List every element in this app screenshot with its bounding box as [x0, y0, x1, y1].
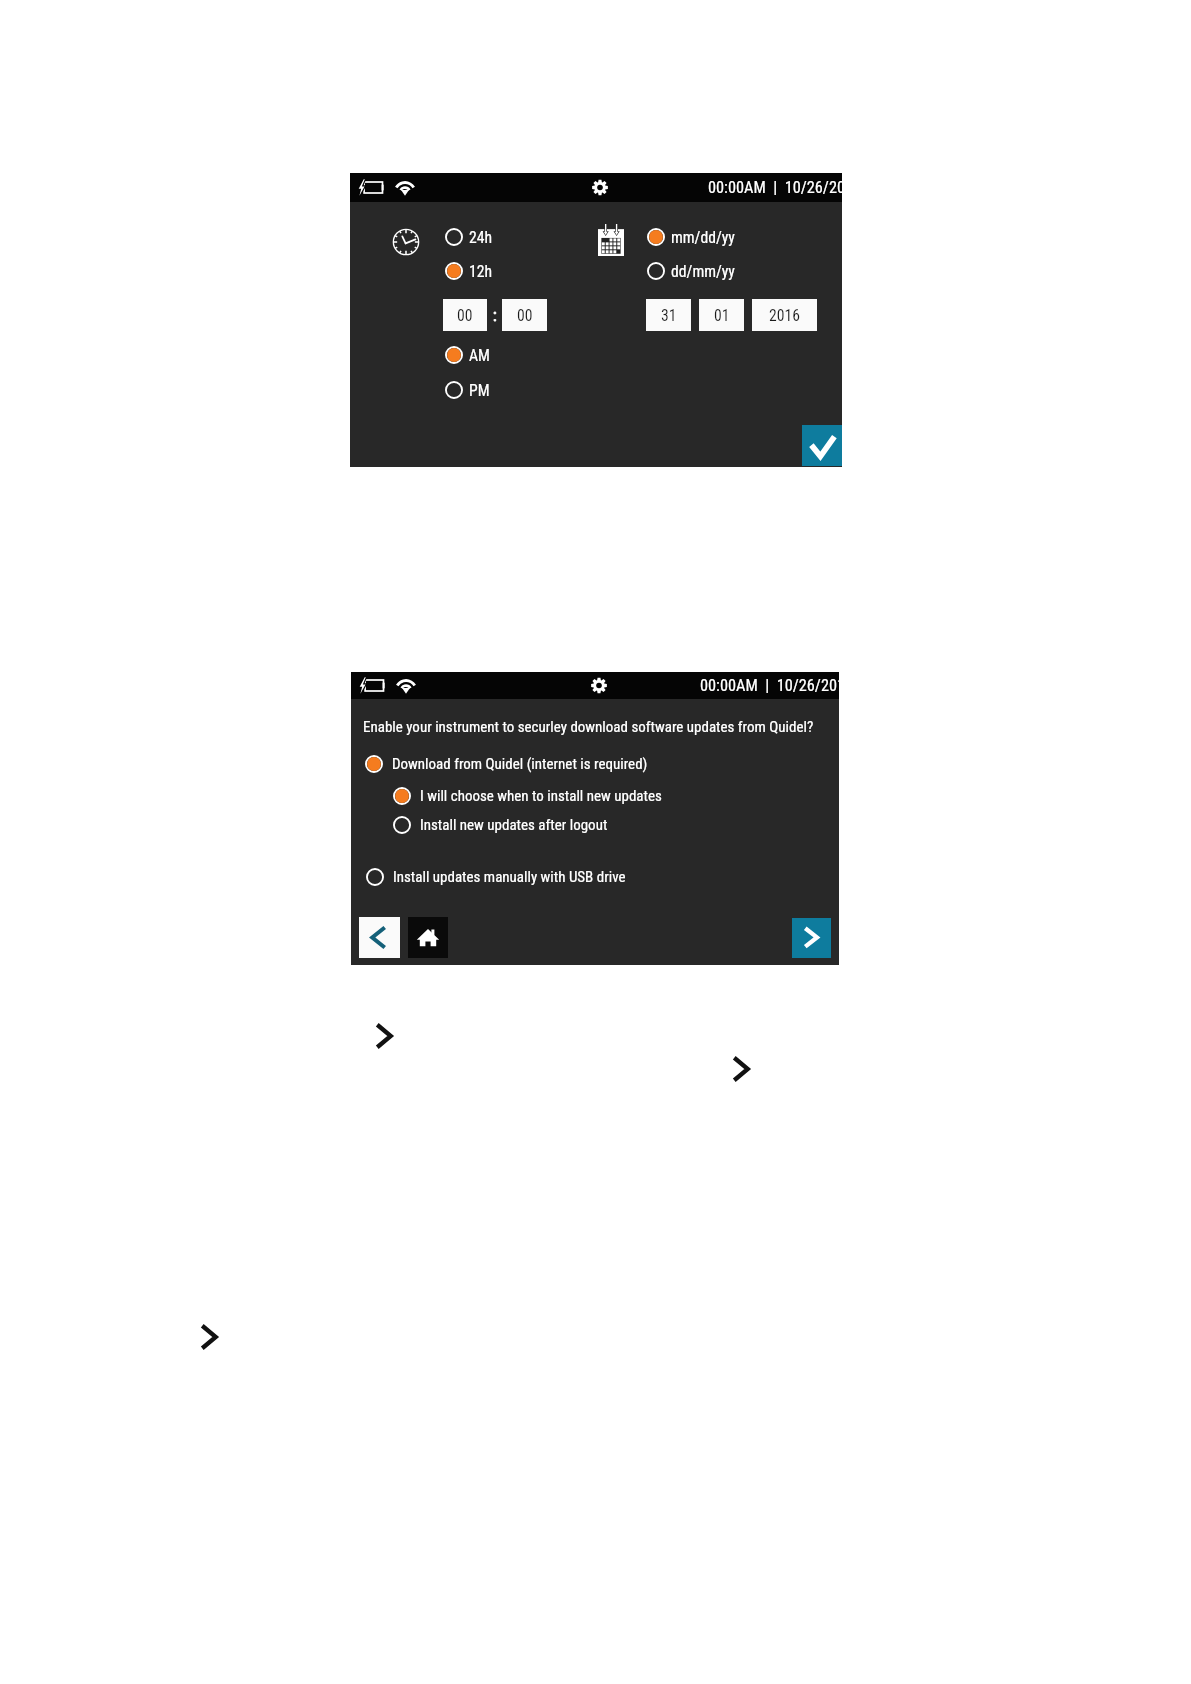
button[interactable]: Next	[372, 1018, 396, 1054]
button[interactable]: AM	[445, 346, 490, 364]
button[interactable]: Download from Quidel (internet is requir…	[365, 755, 648, 773]
staticText: dd/mm/yy	[671, 262, 735, 280]
button[interactable]: Next	[792, 918, 831, 958]
button[interactable]: 01	[699, 299, 744, 331]
button[interactable]: 00	[502, 299, 547, 331]
staticText: 00:00AM | 10/26/2016	[700, 676, 854, 695]
button[interactable]: 24h	[445, 228, 493, 246]
staticText: Install updates manually with USB drive	[393, 868, 626, 886]
staticText: 24h	[469, 228, 493, 246]
staticText: 00	[517, 306, 533, 324]
button[interactable]: Next	[197, 1319, 221, 1355]
staticText: mm/dd/yy	[671, 228, 735, 246]
button[interactable]: Settings	[588, 672, 610, 699]
button[interactable]: I will choose when to install new update…	[393, 787, 662, 805]
staticText: PM	[469, 381, 490, 399]
button[interactable]: Install updates manually with USB drive	[366, 868, 626, 886]
button[interactable]: dd/mm/yy	[647, 262, 735, 280]
staticText: 31	[661, 306, 677, 324]
staticText: Install new updates after logout	[420, 816, 608, 834]
button[interactable]: PM	[445, 381, 490, 399]
button[interactable]: 31	[646, 299, 691, 331]
staticText: 2016	[769, 306, 800, 324]
staticText: 00:00AM | 10/26/2016	[708, 178, 862, 197]
staticText: 12h	[469, 262, 493, 280]
staticText: AM	[469, 346, 490, 364]
staticText: I will choose when to install new update…	[420, 787, 662, 805]
staticText: Download from Quidel (internet is requir…	[392, 755, 648, 773]
staticText: Enable your instrument to securley downl…	[363, 718, 814, 736]
button[interactable]: 2016	[752, 299, 817, 331]
button[interactable]: Install new updates after logout	[393, 816, 608, 834]
button[interactable]: Settings	[589, 173, 611, 202]
button[interactable]: Back	[359, 917, 400, 958]
staticText: :	[493, 306, 497, 324]
staticText: 01	[714, 306, 730, 324]
button[interactable]: Confirm	[802, 425, 842, 466]
button[interactable]: 12h	[445, 262, 493, 280]
button[interactable]: mm/dd/yy	[647, 228, 735, 246]
button[interactable]: 00	[443, 299, 487, 331]
button[interactable]: Next	[729, 1051, 753, 1087]
staticText: 00	[457, 306, 473, 324]
button[interactable]: Home	[408, 917, 448, 958]
